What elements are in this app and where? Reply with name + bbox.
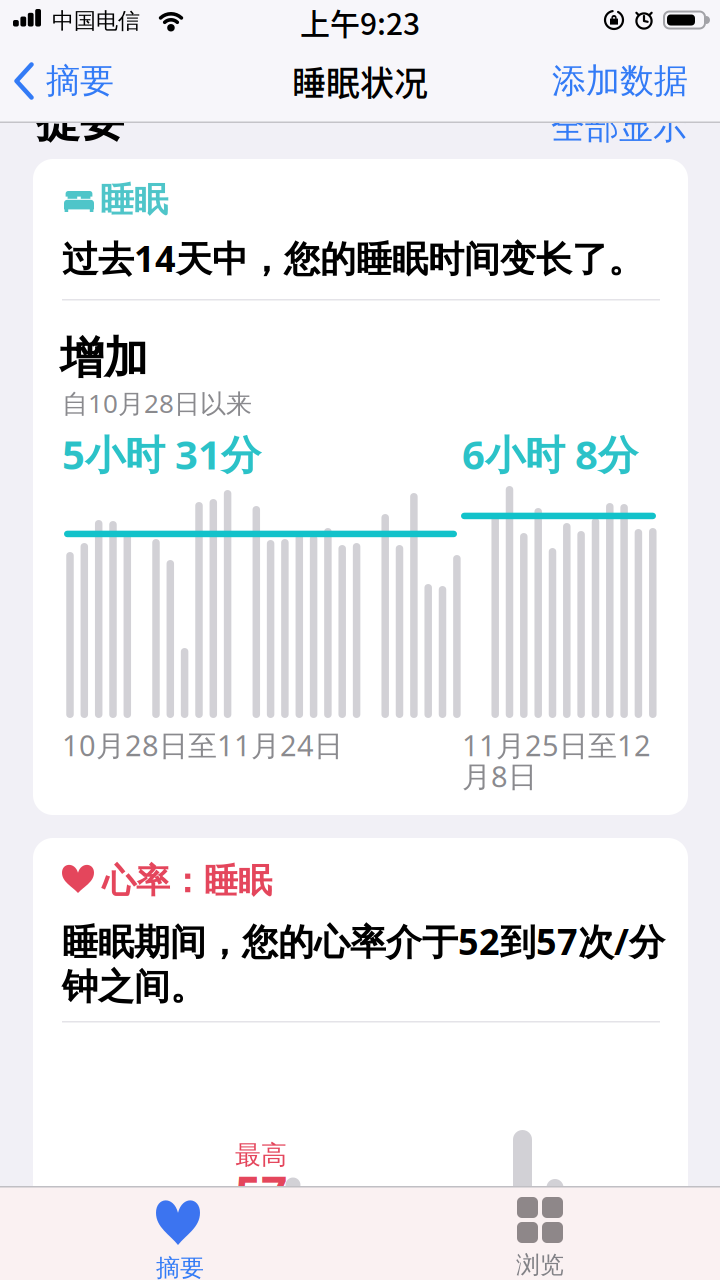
button[interactable]: 全部显示 [551,102,687,152]
staticText: 过去14天中，您的睡眠时间变长了。 [62,233,644,282]
staticText: 增加 [60,330,148,386]
staticText: 摘要 [156,1253,204,1280]
staticText: 11月25日至12 [462,725,651,765]
staticText: 上午9:23 [300,0,420,44]
staticText: 6小时 8分 [462,427,638,481]
staticText: 57 [235,1161,287,1223]
staticText: 心率：睡眠 [102,860,272,902]
staticText: 自10月28日以来 [62,385,252,421]
staticText: 月8日 [462,756,537,796]
staticText: 钟之间。 [62,964,206,1010]
staticText: 睡眠状况 [292,56,428,106]
staticText: 10月28日至11月24日 [62,725,343,765]
button[interactable]: 心率：睡眠 [33,838,688,1280]
staticText: 睡眠期间，您的心率介于52到57次/分 [62,916,665,965]
button[interactable]: 添加数据 [548,56,688,106]
staticText: 5小时 31分 [62,427,261,481]
button[interactable]: 摘要 [14,56,114,106]
staticText: 浏览 [516,1250,564,1280]
staticText: 中国电信 [52,7,140,35]
button[interactable]: 睡眠 [33,159,688,815]
staticText: 全部显示 [551,106,687,148]
staticText: 睡眠 [100,179,168,221]
staticText: 添加数据 [552,60,688,102]
button[interactable]: 摘要 [80,1186,280,1280]
staticText: 摘要 [46,60,114,102]
staticText: 提要 [36,93,124,149]
button[interactable]: 浏览 [440,1186,640,1280]
staticText: 最高 [235,1139,287,1171]
